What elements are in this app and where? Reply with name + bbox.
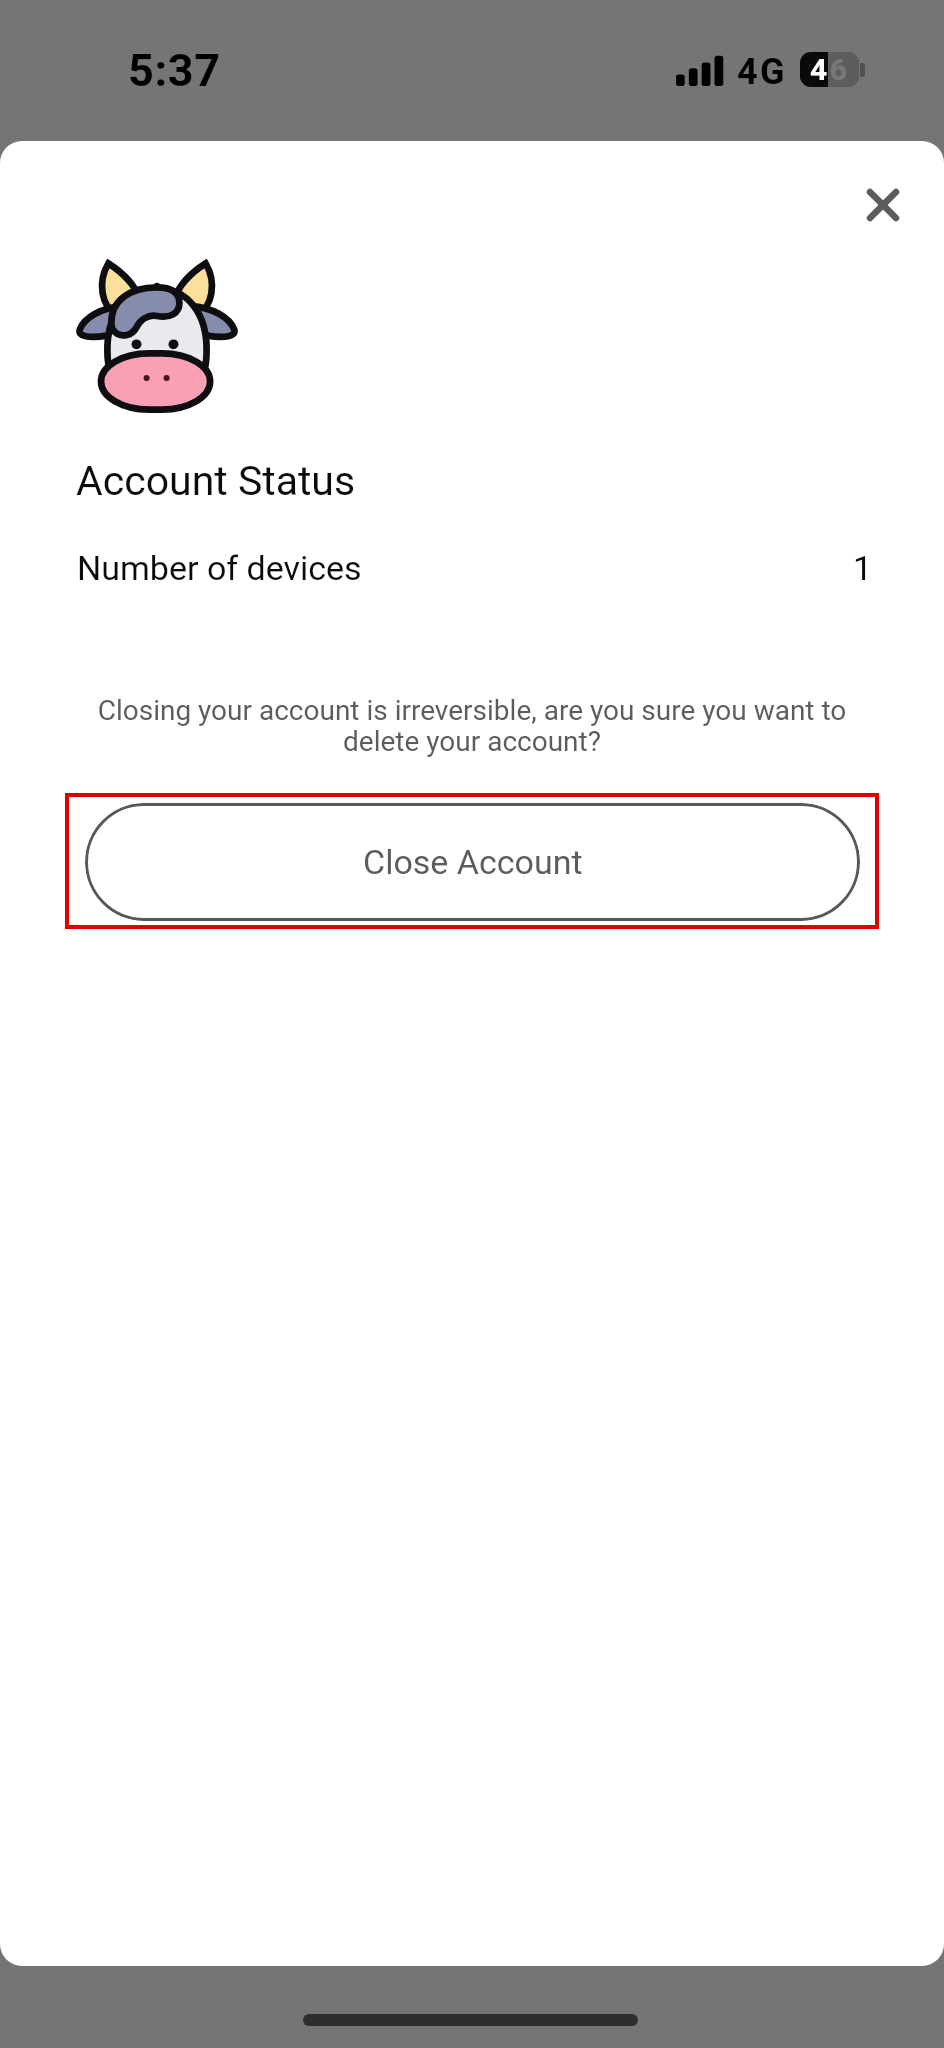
- button[interactable]: Close: [838, 160, 928, 250]
- staticText: 1: [853, 548, 873, 588]
- staticText: Number of devices: [77, 548, 362, 588]
- staticText: Closing your account is irreversible, ar…: [72, 694, 872, 757]
- button[interactable]: Close Account: [85, 803, 860, 921]
- staticText: Close Account: [363, 842, 583, 882]
- staticText: 5:37: [128, 44, 221, 97]
- staticText: Account Status: [76, 457, 356, 505]
- staticText: 46: [810, 52, 850, 87]
- staticText: 4G: [737, 51, 787, 93]
